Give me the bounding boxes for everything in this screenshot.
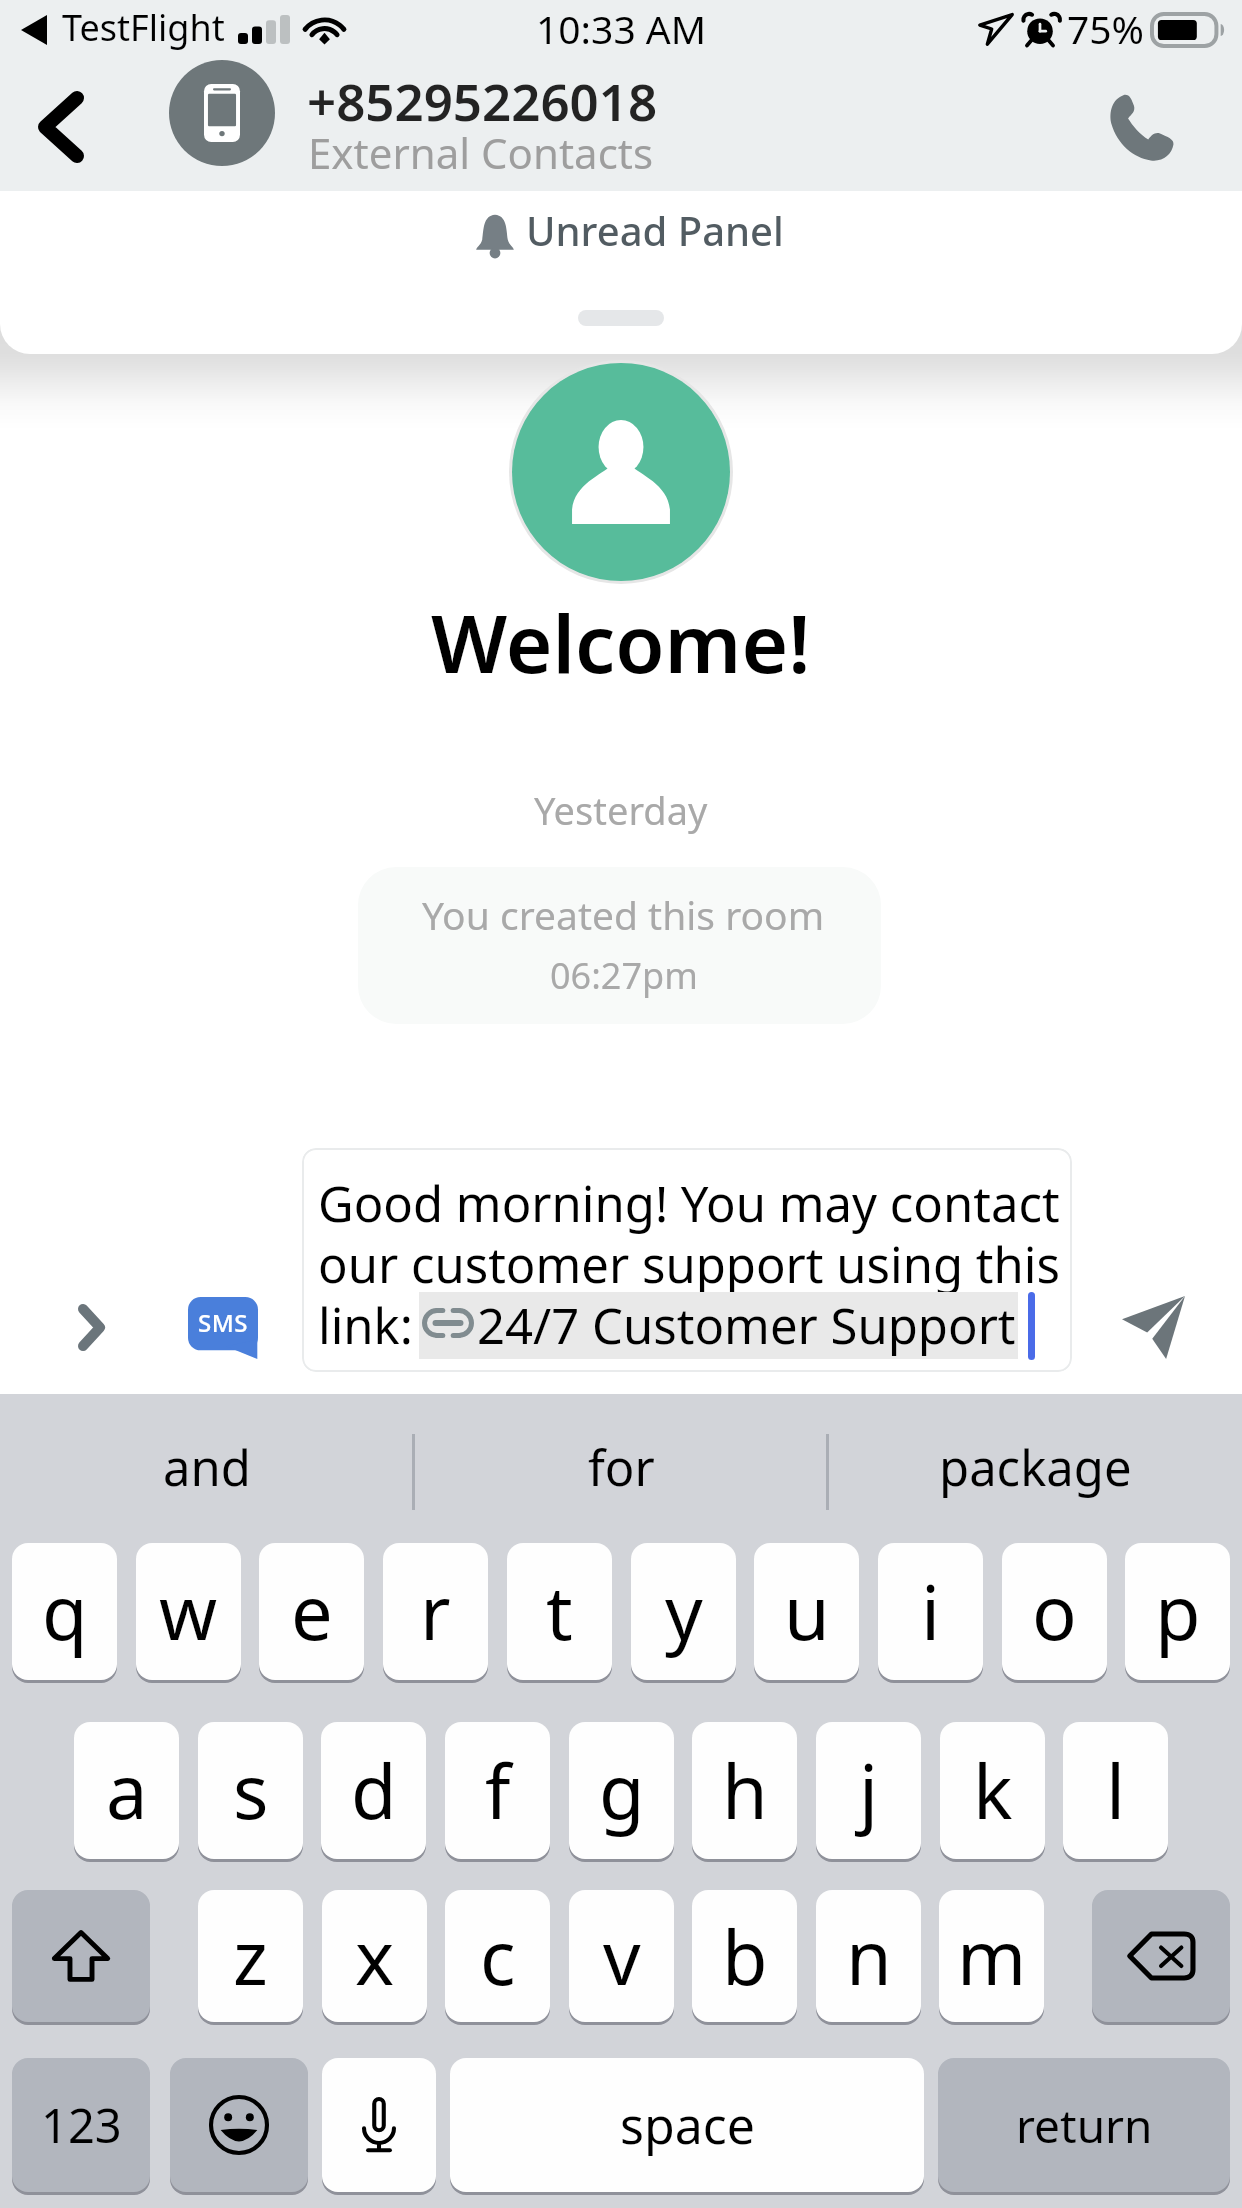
staticText: e	[291, 1561, 333, 1662]
button[interactable]: More options	[45, 1288, 137, 1366]
staticText: 06:27pm	[550, 951, 698, 1000]
staticText: y	[665, 1561, 703, 1662]
staticText: q	[42, 1561, 88, 1662]
staticText: k	[973, 1740, 1013, 1841]
staticText: b	[722, 1906, 768, 2007]
button[interactable]: Backspace	[1092, 1890, 1230, 2022]
staticText: for	[588, 1434, 655, 1501]
staticText: n	[846, 1906, 892, 2007]
staticText: our customer support using this	[318, 1231, 1060, 1298]
staticText: w	[159, 1561, 218, 1662]
button[interactable]: v	[569, 1890, 674, 2022]
button[interactable]: 123	[12, 2058, 150, 2192]
staticText: u	[784, 1561, 830, 1662]
staticText: o	[1032, 1561, 1077, 1662]
button[interactable]: l	[1063, 1722, 1168, 1859]
button[interactable]: Emoji	[170, 2058, 308, 2192]
button[interactable]: z	[198, 1890, 303, 2022]
button[interactable]: x	[322, 1890, 427, 2022]
staticText: v	[603, 1906, 641, 2007]
staticText: l	[1106, 1740, 1126, 1841]
button[interactable]: q	[12, 1543, 117, 1680]
button[interactable]: h	[692, 1722, 797, 1859]
button[interactable]: y	[631, 1543, 736, 1680]
staticText: External Contacts	[308, 124, 654, 181]
button[interactable]: Send	[1092, 1266, 1214, 1388]
staticText: 24/7 Customer Support	[477, 1292, 1016, 1359]
staticText: 75%	[1067, 2, 1145, 55]
button[interactable]: r	[383, 1543, 488, 1680]
staticText: SMS	[198, 1306, 248, 1339]
staticText: Unread Panel	[526, 203, 784, 257]
button[interactable]: return	[938, 2058, 1230, 2192]
staticText: 10:33 AM	[536, 2, 707, 55]
button[interactable]: j	[816, 1722, 921, 1859]
staticText: x	[355, 1906, 395, 2007]
button[interactable]: k	[940, 1722, 1045, 1859]
button[interactable]: m	[939, 1890, 1044, 2022]
staticText: f	[485, 1740, 511, 1841]
button[interactable]: space	[450, 2058, 924, 2192]
staticText: package	[939, 1434, 1132, 1501]
button[interactable]: p	[1125, 1543, 1230, 1680]
staticText: g	[599, 1740, 645, 1841]
staticText: and	[163, 1434, 251, 1501]
staticText: space	[620, 2091, 755, 2159]
staticText: link:	[318, 1292, 413, 1359]
button[interactable]: c	[445, 1890, 550, 2022]
staticText: s	[233, 1740, 269, 1841]
button[interactable]: b	[692, 1890, 797, 2022]
staticText: Yesterday	[534, 784, 708, 836]
button[interactable]: e	[259, 1543, 364, 1680]
button[interactable]: for	[414, 1394, 828, 1540]
staticText: z	[233, 1906, 268, 2007]
staticText: Welcome!	[431, 587, 811, 696]
staticText: p	[1155, 1561, 1201, 1662]
button[interactable]: package	[828, 1394, 1242, 1540]
button[interactable]: SMS	[188, 1297, 258, 1359]
button[interactable]: a	[74, 1722, 179, 1859]
staticText: m	[957, 1906, 1027, 2007]
staticText: j	[859, 1740, 879, 1841]
button[interactable]: g	[569, 1722, 674, 1859]
button[interactable]: Unread Panel	[0, 191, 1242, 354]
button[interactable]: s	[198, 1722, 303, 1859]
staticText: a	[106, 1740, 148, 1841]
staticText: c	[480, 1906, 516, 2007]
button[interactable]: n	[816, 1890, 921, 2022]
button[interactable]: Shift	[12, 1890, 150, 2022]
staticText: Good morning! You may contact	[318, 1170, 1060, 1237]
staticText: h	[722, 1740, 768, 1841]
button[interactable]: t	[507, 1543, 612, 1680]
staticText: d	[351, 1740, 397, 1841]
staticText: TestFlight	[62, 3, 225, 52]
button[interactable]: o	[1002, 1543, 1107, 1680]
staticText: You created this room	[422, 888, 825, 941]
staticText: return	[1016, 2094, 1153, 2157]
button[interactable]: Back	[0, 62, 122, 191]
button[interactable]: Call	[1079, 66, 1199, 186]
button[interactable]: Dictation	[322, 2058, 436, 2192]
staticText: 123	[41, 2093, 122, 2157]
button[interactable]: and	[0, 1394, 414, 1540]
button[interactable]: f	[445, 1722, 550, 1859]
button[interactable]: i	[878, 1543, 983, 1680]
button[interactable]: u	[754, 1543, 859, 1680]
staticText: +85295226018	[307, 66, 658, 135]
button[interactable]: w	[136, 1543, 241, 1680]
staticText: r	[420, 1561, 451, 1662]
button[interactable]: You created this room	[358, 867, 881, 1024]
button[interactable]: d	[321, 1722, 426, 1859]
button[interactable]: Good morning! You may contact	[302, 1148, 1072, 1372]
staticText: i	[921, 1561, 941, 1662]
staticText: t	[546, 1561, 573, 1662]
